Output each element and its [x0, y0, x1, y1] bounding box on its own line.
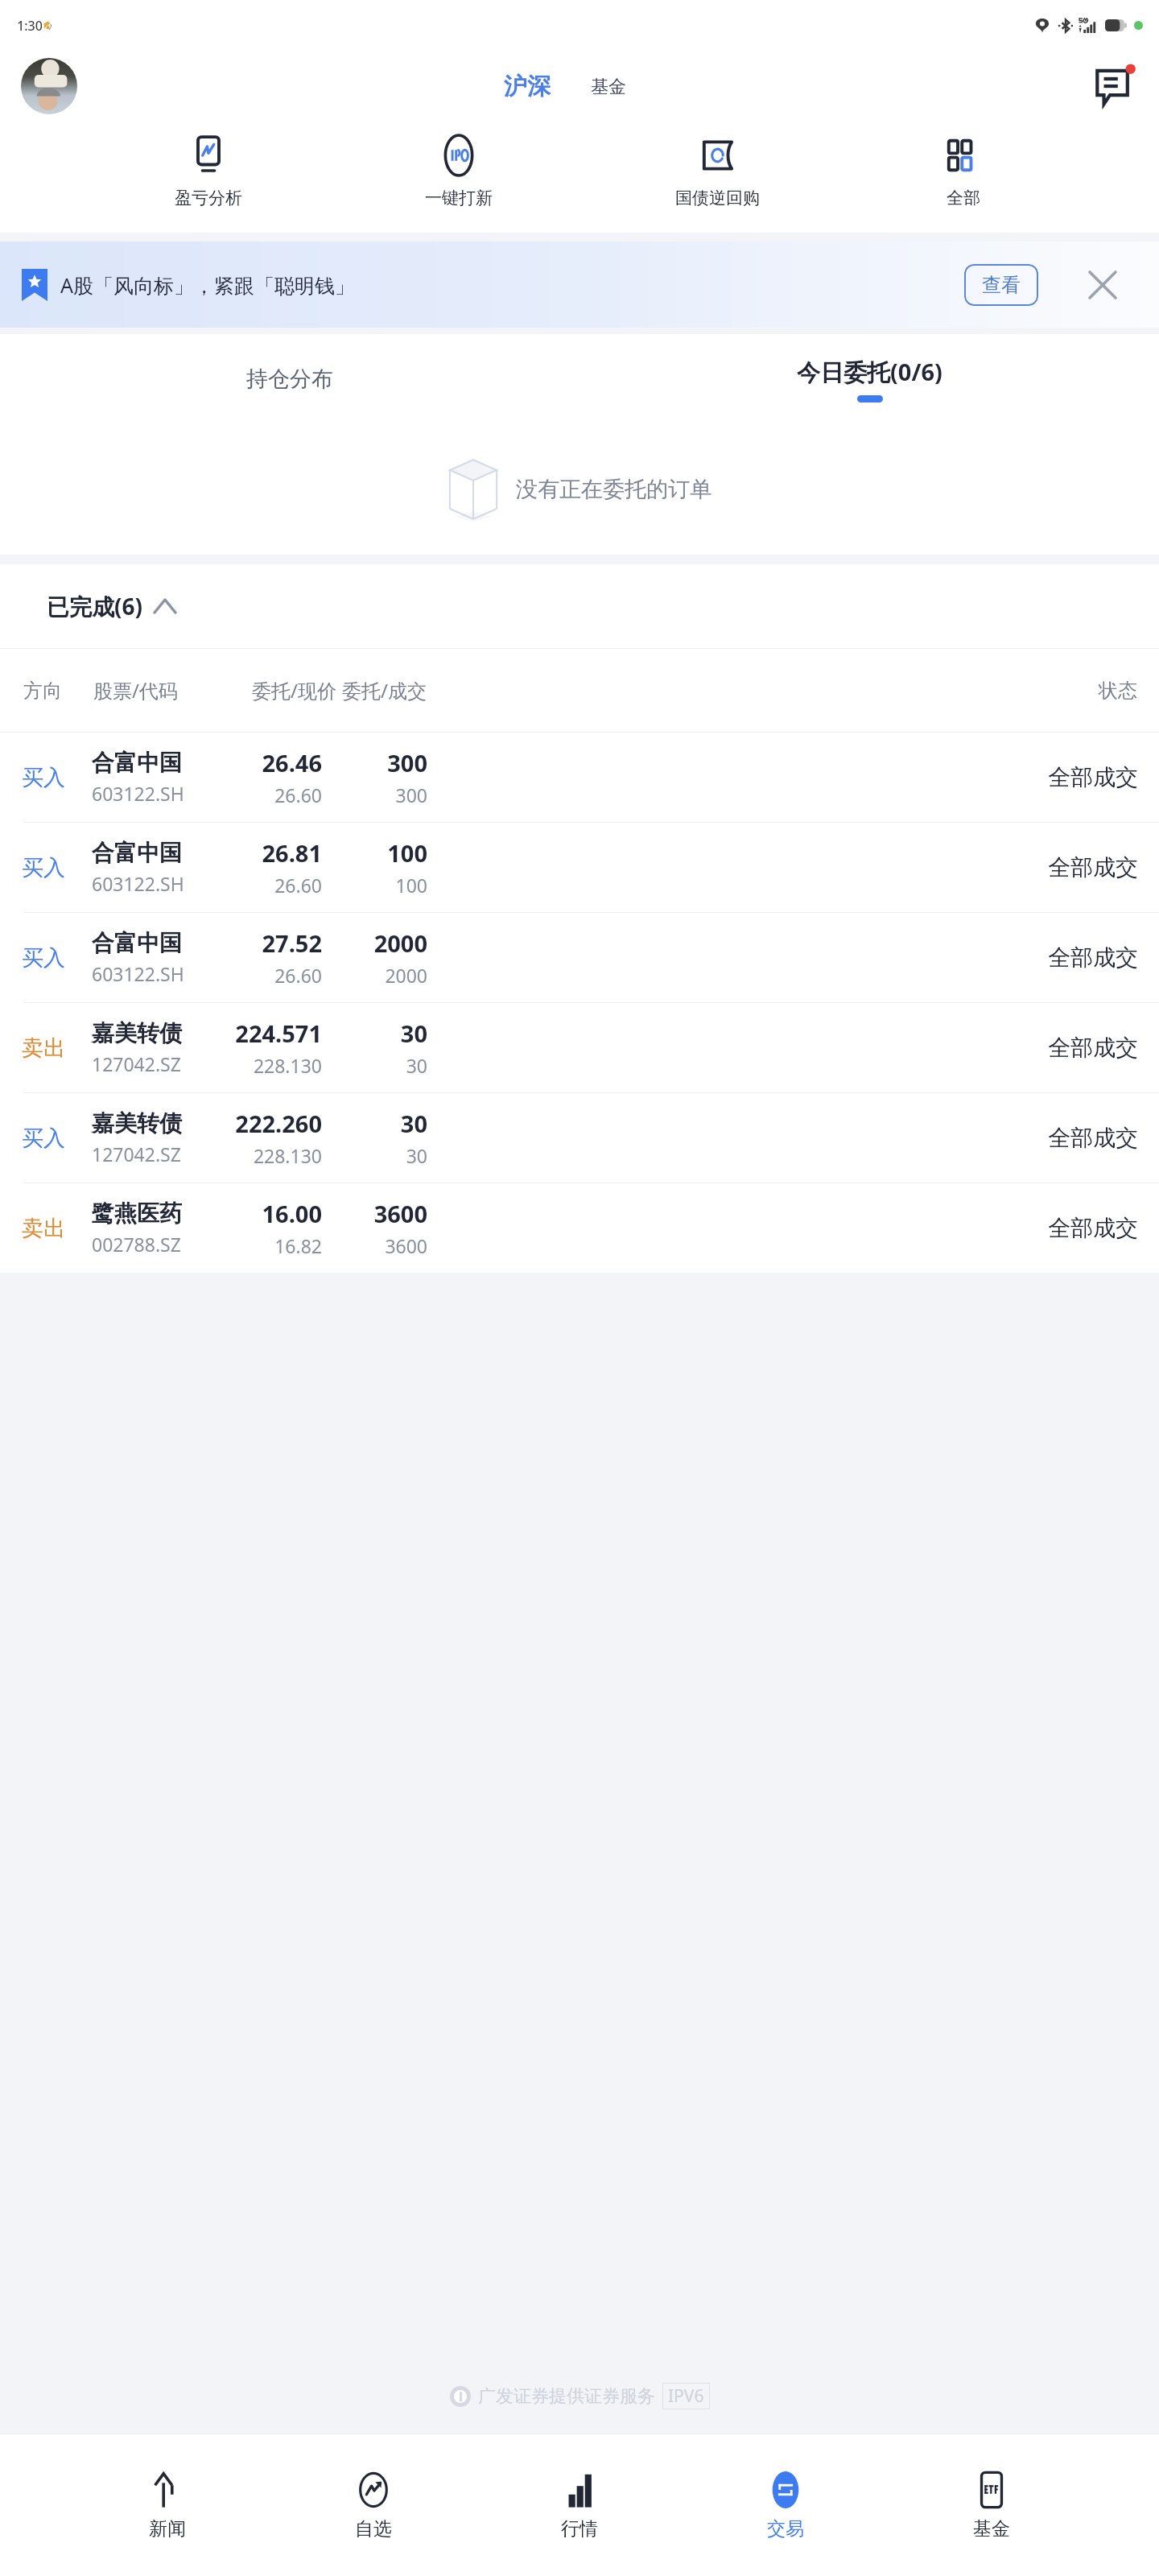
button[interactable]: 盈亏分析	[167, 131, 250, 212]
staticText: 股票/代码	[93, 677, 178, 704]
staticText: 100	[387, 837, 427, 869]
button[interactable]: 新闻	[129, 2464, 206, 2547]
staticText: 买入	[22, 944, 65, 972]
staticText: 127042.SZ	[92, 1051, 181, 1076]
staticText: 委托/现价	[252, 677, 336, 704]
staticText: 沪深	[504, 72, 551, 101]
staticText: 基金	[591, 76, 626, 98]
button[interactable]: 国债逆回购	[667, 131, 768, 212]
staticText: 100	[395, 873, 427, 898]
staticText: 3600	[385, 1233, 427, 1258]
staticText: 1:30	[17, 17, 43, 35]
button[interactable]: 卖出	[0, 1003, 1159, 1092]
button[interactable]: Close	[1085, 267, 1120, 303]
staticText: 2000	[373, 927, 427, 959]
staticText: 合富中国	[92, 839, 182, 867]
button[interactable]: 持仓分布	[0, 334, 579, 424]
staticText: 127042.SZ	[92, 1141, 181, 1166]
staticText: 合富中国	[92, 929, 182, 957]
button[interactable]: 已完成(6)	[0, 564, 1159, 648]
staticText: 全部成交	[1048, 853, 1138, 881]
button[interactable]: 买入	[0, 913, 1159, 1002]
staticText: 基金	[973, 2517, 1010, 2541]
staticText: 嘉美转债	[92, 1019, 182, 1047]
staticText: 228.130	[253, 1053, 322, 1078]
staticText: 30	[406, 1143, 427, 1168]
staticText: 持仓分布	[246, 365, 333, 393]
staticText: 盈亏分析	[175, 188, 242, 208]
staticText: 300	[395, 782, 427, 807]
button[interactable]: 查看	[964, 264, 1038, 306]
staticText: 行情	[561, 2517, 598, 2541]
button[interactable]: 卖出	[0, 1183, 1159, 1273]
staticText: 300	[387, 747, 427, 778]
button[interactable]: 行情	[541, 2464, 618, 2547]
button[interactable]: 一键打新	[417, 131, 501, 212]
staticText: 买入	[22, 854, 65, 881]
staticText: 状态	[1099, 679, 1137, 703]
staticText: 合富中国	[92, 749, 182, 777]
staticText: 228.130	[253, 1143, 322, 1168]
staticText: 一键打新	[425, 188, 493, 208]
button[interactable]: 买入	[0, 1093, 1159, 1183]
staticText: A股「风向标」，紧跟「聪明钱」	[60, 271, 355, 299]
staticText: 鹭燕医药	[92, 1199, 182, 1228]
staticText: 603122.SH	[92, 961, 184, 986]
staticText: 3600	[373, 1198, 427, 1229]
button[interactable]: 买入	[0, 823, 1159, 912]
staticText: 222.260	[235, 1108, 322, 1139]
button[interactable]: 交易	[747, 2464, 824, 2547]
button[interactable]: 今日委托(0/6)	[579, 334, 1159, 424]
staticText: 全部成交	[1048, 943, 1138, 972]
staticText: 002788.SZ	[92, 1232, 181, 1257]
staticText: IPV6	[668, 2384, 704, 2408]
staticText: 全部成交	[1048, 1034, 1138, 1062]
staticText: 国债逆回购	[675, 188, 760, 208]
staticText: 交易	[767, 2517, 804, 2541]
staticText: 嘉美转债	[92, 1109, 182, 1137]
staticText: 26.46	[262, 747, 322, 778]
button[interactable]: Messages	[1091, 64, 1136, 109]
staticText: 全部	[947, 188, 980, 208]
button[interactable]: 基金	[953, 2464, 1030, 2547]
button[interactable]: 买入	[0, 733, 1159, 822]
staticText: 今日委托(0/6)	[797, 356, 942, 388]
staticText: 30	[406, 1053, 427, 1078]
staticText: 没有正在委托的订单	[516, 476, 711, 503]
staticText: 16.82	[274, 1233, 322, 1258]
button[interactable]: 自选	[335, 2464, 412, 2547]
button[interactable]: Profile	[21, 58, 77, 114]
staticText: 买入	[22, 1125, 65, 1152]
staticText: 26.60	[274, 782, 322, 807]
staticText: 已完成(6)	[47, 591, 143, 621]
button[interactable]: 全部	[934, 131, 992, 212]
staticText: 全部成交	[1048, 763, 1138, 791]
staticText: 全部成交	[1048, 1124, 1138, 1152]
staticText: 16.00	[262, 1198, 322, 1229]
staticText: 224.571	[235, 1018, 322, 1049]
staticText: 27.52	[262, 927, 322, 959]
staticText: 卖出	[22, 1215, 65, 1242]
staticText: 卖出	[22, 1034, 65, 1062]
staticText: 30	[400, 1108, 427, 1139]
staticText: 新闻	[149, 2517, 186, 2541]
staticText: 2000	[385, 963, 427, 988]
staticText: 广发证券提供证券服务	[478, 2385, 655, 2408]
staticText: 30	[400, 1018, 427, 1049]
staticText: 买入	[22, 764, 65, 791]
button[interactable]: 沪深	[499, 72, 555, 101]
staticText: 委托/成交	[342, 677, 427, 704]
staticText: 全部成交	[1048, 1214, 1138, 1242]
staticText: 26.81	[262, 837, 322, 869]
button[interactable]: 基金	[586, 76, 631, 98]
staticText: 自选	[355, 2517, 392, 2541]
staticText: 方向	[23, 679, 62, 703]
staticText: 603122.SH	[92, 871, 184, 896]
staticText: 603122.SH	[92, 781, 184, 806]
staticText: 26.60	[274, 873, 322, 898]
staticText: 26.60	[274, 963, 322, 988]
staticText: 查看	[982, 273, 1021, 297]
